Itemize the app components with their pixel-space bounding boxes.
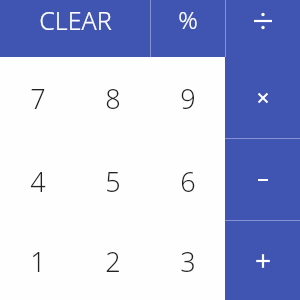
staticText: % <box>178 3 198 36</box>
staticText: 1 <box>30 243 46 280</box>
button[interactable]: Divide <box>225 0 300 57</box>
staticText: CLEAR <box>39 3 112 37</box>
staticText: 4 <box>30 163 46 200</box>
staticText: 7 <box>30 80 46 117</box>
button[interactable]: % <box>150 0 225 57</box>
button[interactable]: Subtract <box>225 139 300 220</box>
button[interactable]: 8 <box>75 57 150 140</box>
staticText: 6 <box>180 163 196 200</box>
staticText: 2 <box>105 243 121 280</box>
button[interactable]: 6 <box>150 140 225 222</box>
button[interactable]: 5 <box>75 140 150 222</box>
button[interactable]: Multiply <box>225 57 300 138</box>
button[interactable]: 3 <box>150 222 225 300</box>
button[interactable]: 9 <box>150 57 225 140</box>
button[interactable]: CLEAR <box>0 0 150 57</box>
button[interactable]: 7 <box>0 57 75 140</box>
staticText: 3 <box>180 243 196 280</box>
staticText: 9 <box>180 80 196 117</box>
staticText: 8 <box>105 80 121 117</box>
button[interactable]: 2 <box>75 222 150 300</box>
button[interactable]: 1 <box>0 222 75 300</box>
button[interactable]: 4 <box>0 140 75 222</box>
staticText: 5 <box>105 163 121 200</box>
button[interactable]: Add <box>225 221 300 300</box>
